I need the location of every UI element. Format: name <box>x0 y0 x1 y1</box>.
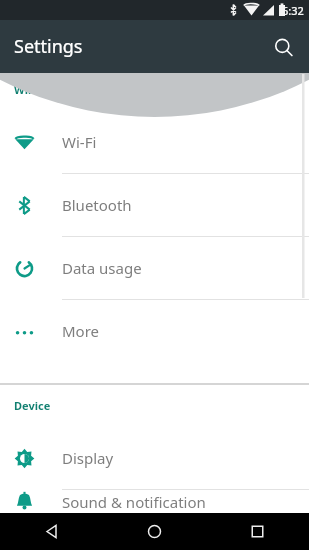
button[interactable]: Back <box>0 513 103 550</box>
button[interactable]: Wi-Fi <box>0 111 309 174</box>
staticText: Wi-Fi <box>62 132 97 152</box>
button[interactable]: Display <box>0 427 309 490</box>
button[interactable]: Data usage <box>0 237 309 300</box>
staticText: Data usage <box>62 258 142 278</box>
staticText: Bluetooth <box>62 195 132 215</box>
button[interactable]: Search <box>263 27 303 67</box>
staticText: Settings <box>14 34 83 59</box>
staticText: Wireless & networks <box>14 82 309 97</box>
button[interactable]: Recents <box>206 513 309 550</box>
staticText: 6:32 <box>282 3 304 18</box>
button[interactable]: More <box>0 300 309 362</box>
staticText: More <box>62 321 100 341</box>
staticText: Display <box>62 448 114 468</box>
staticText: Device <box>14 398 309 413</box>
staticText: Sound & notification <box>62 492 206 512</box>
button[interactable]: Bluetooth <box>0 174 309 237</box>
button[interactable]: Home <box>103 513 206 550</box>
button[interactable]: Sound & notification <box>0 490 309 513</box>
